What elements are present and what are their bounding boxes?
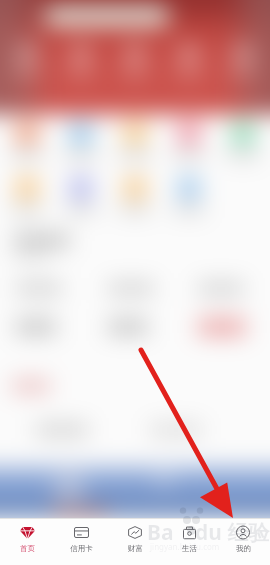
staticText: 财富 [128, 544, 143, 553]
button[interactable]: 信用卡 [54, 519, 108, 565]
staticText: Ba [147, 518, 174, 547]
staticText: 生活 [182, 544, 197, 553]
staticText: 信用卡 [70, 544, 93, 553]
staticText: du 经验 [195, 518, 270, 547]
staticText: jingyan.baidu.com [150, 541, 220, 552]
button[interactable]: 生活 [162, 519, 216, 565]
other: Annotation arrow [0, 0, 270, 565]
button[interactable]: 财富 [108, 519, 162, 565]
staticText: 我的 [236, 544, 251, 553]
button[interactable]: 首页 [0, 519, 54, 565]
button[interactable]: 我的 [216, 519, 270, 565]
staticText: 首页 [20, 544, 35, 553]
